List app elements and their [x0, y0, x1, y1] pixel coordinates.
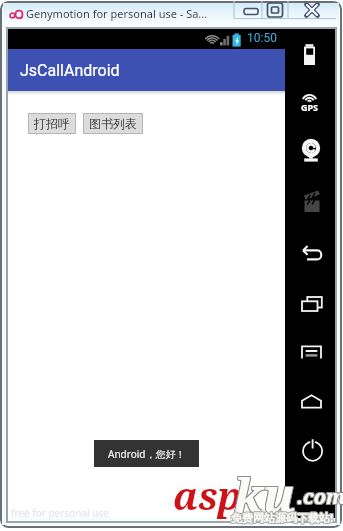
staticText: .com: [298, 484, 343, 511]
staticText: 免费网站源码下载站!: [232, 510, 335, 525]
button[interactable]: Camera: [300, 136, 324, 164]
staticText: ku: [235, 463, 296, 528]
staticText: ku: [233, 462, 294, 527]
staticText: ku: [234, 463, 295, 528]
staticText: .com: [296, 482, 343, 509]
button[interactable]: Recent apps: [300, 292, 324, 320]
staticText: asp: [173, 469, 242, 521]
staticText: free for personal use: [11, 506, 109, 520]
staticText: 打招呼: [34, 116, 70, 131]
staticText: Android，您好！: [108, 447, 186, 461]
button[interactable]: Minimize: [234, 1, 262, 19]
staticText: .com: [297, 483, 343, 510]
staticText: 免费网站源码下载站!: [230, 510, 333, 525]
staticText: 免费网站源码下载站!: [232, 509, 335, 524]
staticText: 免费网站源码下载站!: [231, 510, 334, 525]
button[interactable]: 图书列表: [83, 113, 143, 134]
button[interactable]: Close: [288, 1, 336, 19]
button[interactable]: GPS: [300, 92, 324, 120]
button[interactable]: Back: [300, 244, 324, 272]
staticText: 免费网站源码下载站!: [231, 509, 334, 524]
staticText: .com: [297, 484, 343, 511]
staticText: ku: [234, 462, 295, 527]
button[interactable]: Home: [300, 391, 324, 419]
staticText: 免费网站源码下载站!: [230, 509, 333, 524]
staticText: .com: [296, 483, 343, 510]
staticText: ku: [235, 462, 296, 527]
staticText: 10:50: [247, 31, 277, 45]
staticText: .com: [296, 484, 343, 511]
button[interactable]: Power: [300, 438, 324, 466]
staticText: ku: [235, 461, 296, 526]
staticText: ku: [234, 461, 295, 526]
button[interactable]: Record video: [300, 188, 324, 216]
button[interactable]: Menu: [300, 342, 324, 370]
staticText: Genymotion for personal use - Sa...: [26, 6, 208, 21]
staticText: 免费网站源码下载站!: [231, 511, 334, 526]
staticText: 免费网站源码下载站!: [230, 511, 333, 526]
staticText: .com: [298, 483, 343, 510]
staticText: .com: [297, 482, 343, 509]
staticText: JsCallAndroid: [20, 61, 120, 80]
staticText: 图书列表: [89, 116, 137, 131]
button[interactable]: Restore: [262, 1, 288, 19]
button[interactable]: 打招呼: [28, 113, 76, 134]
staticText: ku: [233, 463, 294, 528]
staticText: 免费网站源码下载站!: [232, 511, 335, 526]
staticText: ku: [233, 461, 294, 526]
button[interactable]: Battery: [300, 42, 324, 70]
staticText: .com: [298, 482, 343, 509]
staticText: GPS: [298, 101, 321, 113]
